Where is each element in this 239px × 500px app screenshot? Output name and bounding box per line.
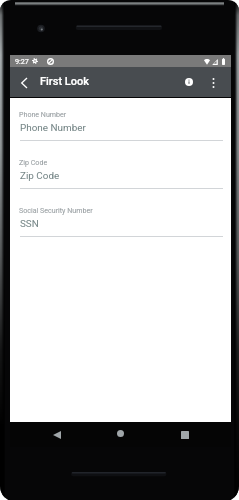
staticText: Zip Code [20,170,60,182]
staticText: SSN [20,218,39,230]
staticText: Phone Number [19,110,67,118]
button[interactable]: More options [200,70,226,96]
staticText: 9:27 [15,57,29,65]
button[interactable]: Home [107,421,133,446]
staticText: Phone Number [20,122,86,134]
button[interactable]: Info [176,69,202,95]
staticText: Zip Code [19,158,48,166]
button[interactable]: Navigate up [11,70,37,96]
button[interactable]: Recent apps [172,422,198,447]
button[interactable]: Back [44,422,70,447]
staticText: Social Security Number [19,206,93,214]
staticText: First Look [40,75,89,88]
